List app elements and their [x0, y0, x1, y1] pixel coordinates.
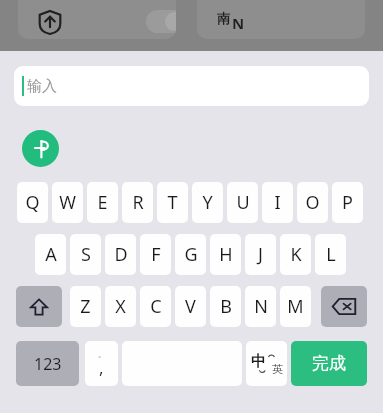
- other: Shield upload: [38, 10, 62, 34]
- staticText: Q: [25, 190, 40, 215]
- button[interactable]: Toggle: [146, 10, 176, 33]
- button[interactable]: R: [122, 182, 153, 223]
- button[interactable]: B: [210, 286, 241, 327]
- staticText: J: [258, 242, 263, 267]
- staticText: 完成: [312, 353, 346, 374]
- button[interactable]: Y: [192, 182, 223, 223]
- staticText: H: [219, 242, 233, 267]
- staticText: V: [185, 294, 196, 319]
- staticText: K: [290, 242, 302, 267]
- staticText: T: [167, 190, 178, 215]
- staticText: R: [132, 190, 144, 215]
- button[interactable]: D: [105, 234, 136, 275]
- staticText: F: [151, 242, 161, 267]
- staticText: W: [59, 190, 76, 215]
- button[interactable]: Comma and period: [85, 341, 118, 386]
- staticText: L: [326, 242, 336, 267]
- button[interactable]: C: [140, 286, 171, 327]
- staticText: I: [274, 190, 281, 215]
- button[interactable]: 123: [16, 341, 79, 386]
- staticText: 中: [251, 352, 266, 371]
- button[interactable]: Shield upload: [18, 0, 176, 39]
- staticText: U: [236, 190, 250, 215]
- staticText: O: [305, 190, 320, 215]
- staticText: ,: [99, 356, 104, 379]
- button[interactable]: E: [87, 182, 118, 223]
- staticText: 输入: [27, 77, 57, 96]
- staticText: X: [115, 294, 126, 319]
- button[interactable]: M: [280, 286, 311, 327]
- button[interactable]: P: [332, 182, 363, 223]
- button[interactable]: F: [140, 234, 171, 275]
- button[interactable]: G: [175, 234, 206, 275]
- button[interactable]: K: [280, 234, 311, 275]
- staticText: 。: [98, 349, 106, 359]
- button[interactable]: Z: [70, 286, 101, 327]
- staticText: N: [232, 13, 245, 33]
- button[interactable]: Chinese English switch: [246, 341, 287, 386]
- button[interactable]: X: [105, 286, 136, 327]
- button[interactable]: A: [35, 234, 66, 275]
- staticText: G: [184, 242, 198, 267]
- staticText: 南: [217, 10, 230, 26]
- button[interactable]: Backspace: [321, 286, 367, 327]
- staticText: M: [287, 294, 304, 319]
- button[interactable]: I: [262, 182, 293, 223]
- button[interactable]: V: [175, 286, 206, 327]
- button[interactable]: U: [227, 182, 258, 223]
- button[interactable]: T: [157, 182, 188, 223]
- button[interactable]: O: [297, 182, 328, 223]
- staticText: 123: [34, 353, 62, 375]
- staticText: A: [45, 242, 57, 267]
- button[interactable]: L: [315, 234, 346, 275]
- staticText: E: [97, 190, 108, 215]
- button[interactable]: Paste: [22, 130, 59, 167]
- staticText: S: [81, 242, 91, 267]
- button[interactable]: J: [245, 234, 276, 275]
- button[interactable]: S: [70, 234, 101, 275]
- staticText: C: [150, 294, 162, 319]
- button[interactable]: 完成: [291, 341, 367, 386]
- staticText: 英: [272, 362, 283, 376]
- staticText: N: [254, 294, 268, 319]
- staticText: B: [220, 294, 232, 319]
- button[interactable]: 输入: [14, 66, 369, 106]
- staticText: Y: [202, 190, 213, 215]
- button[interactable]: Shift: [16, 286, 62, 327]
- staticText: Z: [80, 294, 91, 319]
- staticText: D: [114, 242, 128, 267]
- staticText: P: [342, 190, 353, 215]
- button[interactable]: N: [245, 286, 276, 327]
- button[interactable]: W: [52, 182, 83, 223]
- button[interactable]: 南: [197, 0, 365, 39]
- button[interactable]: H: [210, 234, 241, 275]
- button[interactable]: Q: [17, 182, 48, 223]
